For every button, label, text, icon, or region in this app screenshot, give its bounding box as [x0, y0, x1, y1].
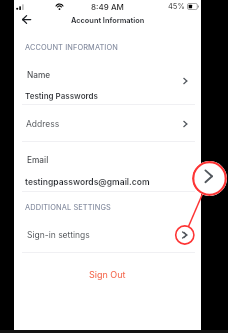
staticText: Sign Out: [89, 269, 126, 280]
staticText: Account Information: [71, 16, 145, 25]
button[interactable]: Back: [18, 11, 35, 28]
button[interactable]: Open: [178, 74, 192, 88]
staticText: Email: [27, 155, 49, 165]
staticText: ADDITIONAL SETTINGS: [25, 203, 111, 212]
button[interactable]: Sign Out: [82, 266, 132, 282]
staticText: Name: [27, 70, 51, 80]
staticText: 45%: [168, 2, 185, 11]
button[interactable]: Open sign-in settings: [192, 161, 227, 196]
button[interactable]: [14, 105, 201, 142]
staticText: ACCOUNT INFORMATION: [25, 43, 118, 52]
button[interactable]: Open: [178, 228, 192, 242]
button[interactable]: [14, 60, 201, 104]
staticText: testingpasswords@gmail.com: [25, 177, 150, 187]
staticText: 8:49 AM: [91, 2, 124, 12]
button[interactable]: [14, 142, 201, 191]
button[interactable]: Open: [178, 117, 192, 131]
staticText: Testing Passwords: [25, 91, 98, 101]
staticText: Address: [26, 119, 60, 129]
staticText: Sign-in settings: [27, 230, 90, 240]
button[interactable]: [14, 217, 201, 252]
